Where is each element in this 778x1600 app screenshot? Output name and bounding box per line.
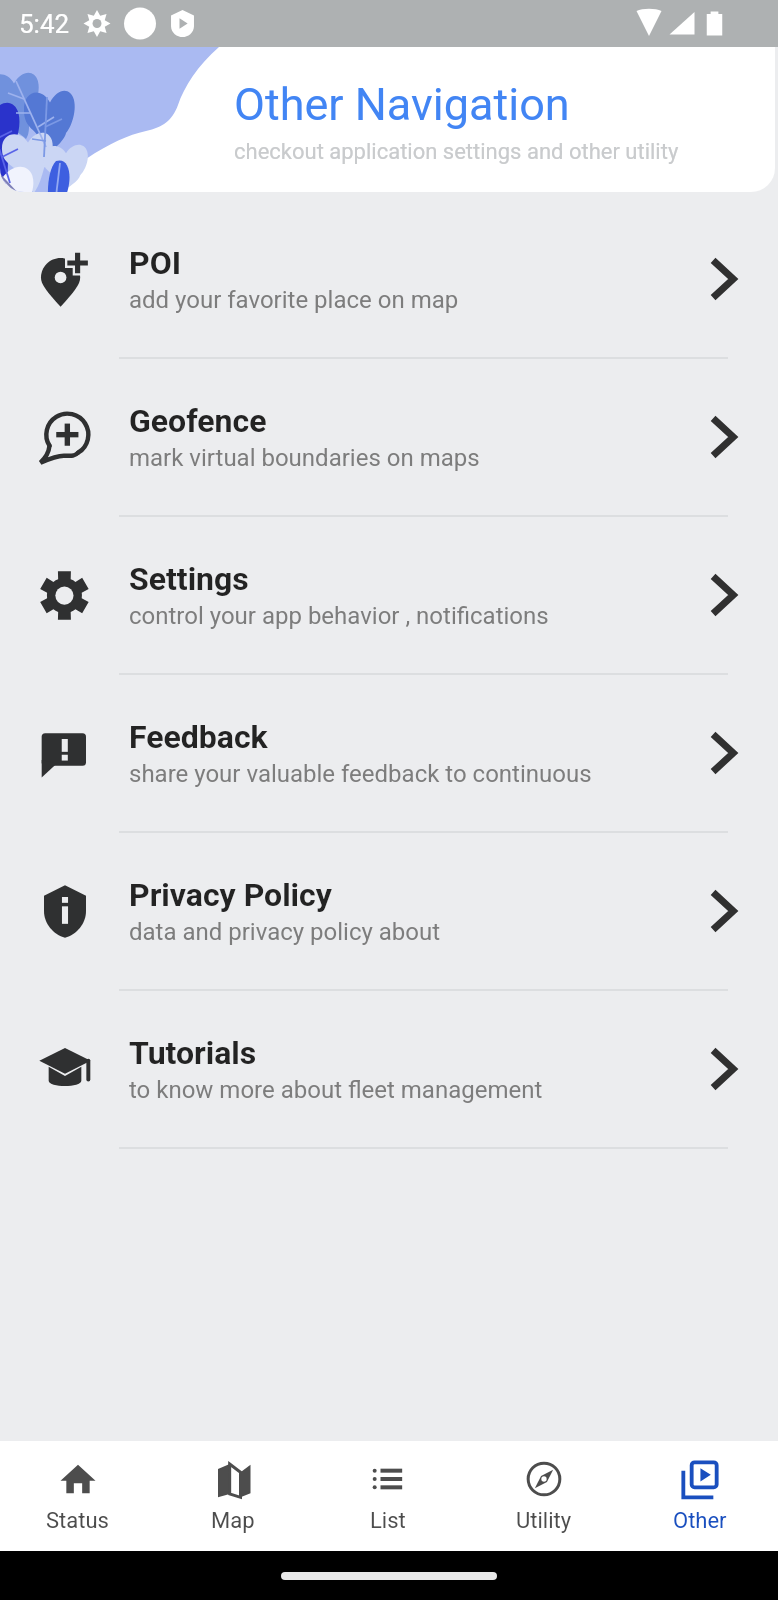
staticText: Privacy Policy [129,876,332,914]
staticText: checkout application settings and other … [234,139,679,165]
staticText: add your favorite place on map [129,286,459,314]
staticText: Utility [516,1508,572,1534]
button[interactable]: Utility [466,1459,622,1534]
staticText: data and privacy policy about [129,918,441,946]
button[interactable]: List [310,1459,466,1534]
button[interactable]: POI [0,201,778,359]
staticText: Tutorials [129,1034,257,1072]
staticText: Settings [129,560,249,598]
staticText: to know more about fleet management [129,1076,543,1104]
button[interactable]: Tutorials [0,991,778,1149]
button[interactable]: Map [155,1459,310,1534]
button[interactable]: Settings [0,517,778,675]
staticText: POI [129,244,182,282]
staticText: Other [673,1508,727,1534]
button[interactable]: Other [622,1459,778,1534]
button[interactable]: Privacy Policy [0,833,778,991]
staticText: 5:42 [19,9,70,39]
button[interactable]: Geofence [0,359,778,517]
button[interactable]: Feedback [0,675,778,833]
staticText: control your app behavior , notification… [129,602,549,630]
staticText: List [370,1508,406,1534]
staticText: Status [46,1508,109,1534]
staticText: Map [211,1508,255,1534]
staticText: share your valuable feedback to continuo… [129,760,592,788]
staticText: Geofence [129,402,267,440]
staticText: Feedback [129,718,268,756]
button[interactable]: Status [0,1459,155,1534]
staticText: Other Navigation [234,78,570,131]
staticText: mark virtual boundaries on maps [129,444,480,472]
